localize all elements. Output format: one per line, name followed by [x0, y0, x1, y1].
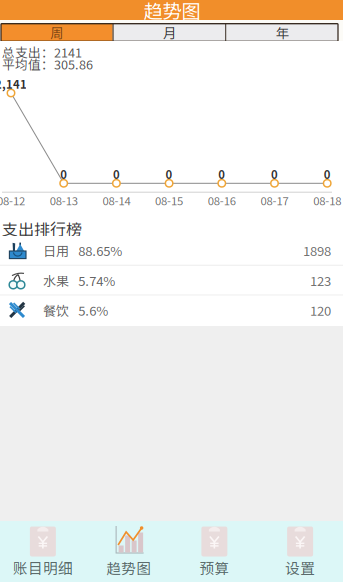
button[interactable]: 月: [114, 24, 225, 41]
staticText: 123: [310, 271, 331, 290]
staticText: 水果: [43, 271, 69, 290]
button[interactable]: 趋势图: [86, 521, 172, 582]
staticText: 5.74%: [78, 271, 115, 290]
staticText: 08-18: [313, 192, 341, 208]
button[interactable]: 周: [1, 24, 113, 41]
button[interactable]: 日用: [0, 236, 343, 265]
button[interactable]: 水果: [0, 266, 343, 295]
button[interactable]: 年: [226, 24, 338, 41]
staticText: 周: [50, 23, 63, 42]
staticText: 月: [163, 23, 176, 42]
button[interactable]: 账目明细: [0, 521, 86, 582]
button[interactable]: 预算: [171, 521, 257, 582]
staticText: 5.6%: [78, 300, 108, 319]
staticText: 08-14: [102, 192, 130, 208]
staticText: 趋势图: [143, 0, 200, 24]
button[interactable]: 餐饮: [0, 296, 343, 324]
staticText: 0: [271, 166, 278, 182]
button[interactable]: 设置: [257, 521, 343, 582]
staticText: 08-16: [208, 192, 236, 208]
staticText: 预算: [199, 557, 229, 578]
staticText: 08-15: [155, 192, 183, 208]
staticText: 年: [276, 23, 289, 42]
staticText: 0: [218, 166, 225, 182]
staticText: 总支出：2141: [2, 43, 82, 61]
staticText: 2,141: [0, 76, 27, 92]
staticText: 设置: [285, 557, 315, 578]
staticText: 账目明细: [13, 557, 73, 578]
staticText: 0: [113, 166, 120, 182]
staticText: 08-13: [50, 192, 78, 208]
staticText: 0: [166, 166, 173, 182]
staticText: 支出排行榜: [2, 217, 82, 240]
staticText: 88.65%: [78, 241, 122, 260]
staticText: 趋势图: [106, 557, 151, 578]
staticText: 120: [310, 300, 331, 319]
staticText: 餐饮: [43, 300, 69, 319]
staticText: 日用: [43, 241, 69, 260]
staticText: 1898: [303, 241, 331, 260]
staticText: 平均值：305.86: [2, 55, 93, 73]
staticText: 0: [60, 166, 67, 182]
staticText: 08-12: [0, 192, 25, 208]
staticText: 08-17: [260, 192, 288, 208]
staticText: 0: [324, 166, 331, 182]
